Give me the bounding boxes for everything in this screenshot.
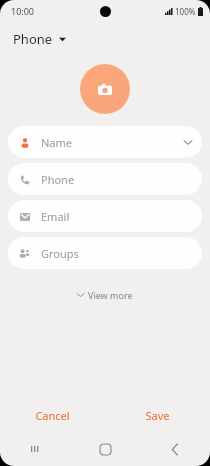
staticText: Email (41, 209, 70, 224)
button[interactable]: Email (8, 200, 202, 232)
button[interactable]: Cancel (0, 398, 105, 432)
button[interactable]: Add photo (80, 64, 130, 114)
button[interactable]: Groups (8, 237, 202, 269)
staticText: 100% (175, 6, 196, 17)
staticText: Groups (41, 246, 79, 261)
button[interactable]: Phone (11, 28, 68, 50)
staticText: Name (41, 135, 73, 150)
button[interactable]: View more (71, 286, 139, 304)
button[interactable]: Save (105, 398, 210, 432)
button[interactable]: Back (140, 432, 210, 466)
button[interactable]: Phone (8, 163, 202, 195)
button[interactable]: Home (70, 432, 140, 466)
staticText: View more (88, 289, 133, 301)
button[interactable]: Name (8, 126, 202, 158)
staticText: Cancel (35, 408, 70, 423)
button[interactable]: Recent apps (0, 432, 70, 466)
staticText: 10:00 (11, 5, 35, 17)
staticText: Phone (41, 172, 75, 187)
staticText: Save (145, 408, 170, 423)
staticText: Phone (13, 30, 53, 48)
